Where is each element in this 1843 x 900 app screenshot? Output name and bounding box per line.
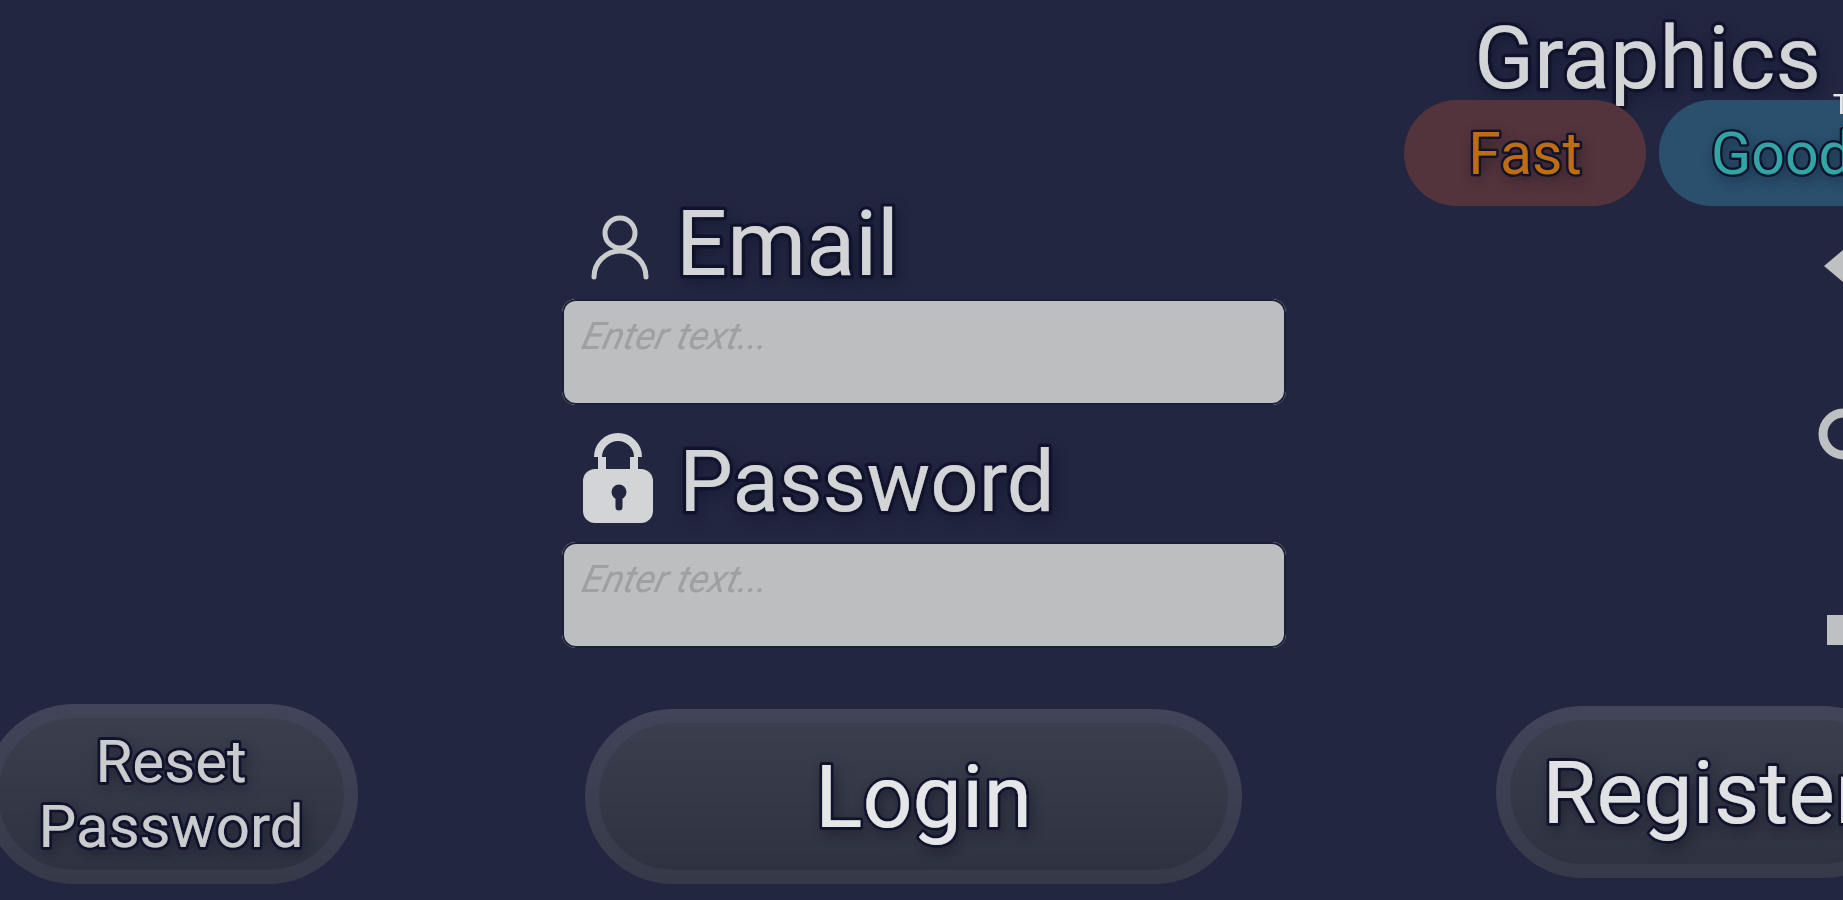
staticText: T (1833, 88, 1843, 121)
button[interactable]: Reset Password (0, 704, 358, 884)
staticText: Reset Password (38, 726, 304, 862)
staticText: Register (1542, 741, 1843, 844)
button[interactable]: Enter text... (562, 299, 1286, 405)
staticText: Fast (1468, 119, 1582, 188)
staticText: Password (679, 432, 1055, 532)
button[interactable]: Fast (1404, 100, 1646, 206)
staticText: Enter text... (580, 557, 766, 602)
staticText: Good (1711, 119, 1843, 188)
button[interactable]: Login (585, 709, 1242, 884)
button[interactable]: Good (1659, 100, 1843, 206)
staticText: Login (815, 745, 1032, 848)
staticText: Graphics (1474, 6, 1821, 109)
staticText: Graphics (1474, 6, 1821, 109)
staticText: Fast (1468, 119, 1582, 188)
button[interactable]: Register (1496, 706, 1843, 878)
staticText: Email (676, 192, 899, 297)
staticText: Login (815, 745, 1032, 848)
staticText: Email (676, 192, 899, 297)
staticText: Good (1711, 119, 1843, 188)
staticText: Enter text... (580, 314, 766, 359)
staticText: Register (1542, 741, 1843, 844)
button[interactable]: Enter text... (562, 542, 1286, 648)
staticText: Reset Password (38, 726, 304, 862)
staticText: Password (679, 432, 1055, 532)
